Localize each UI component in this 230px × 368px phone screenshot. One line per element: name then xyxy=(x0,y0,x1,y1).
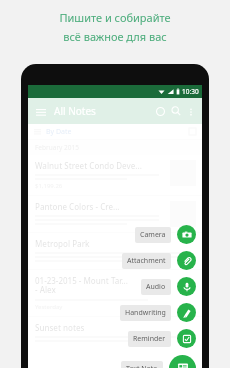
button[interactable]: Reminder xyxy=(177,329,196,348)
staticText: All Notes xyxy=(54,104,96,118)
staticText: Sunset notes xyxy=(35,322,85,333)
button[interactable]: Open navigation drawer xyxy=(33,104,48,119)
staticText: By Date xyxy=(46,127,72,137)
button[interactable]: Metropol Park xyxy=(28,233,202,269)
staticText: Metropol Park xyxy=(35,238,90,249)
button[interactable]: Camera xyxy=(135,227,171,243)
button[interactable]: Search xyxy=(168,103,184,119)
staticText: Attachment xyxy=(127,256,166,266)
staticText: Walnut Street Condo Deve... xyxy=(35,160,142,171)
staticText: Pantone Colors - Cre... xyxy=(35,201,120,212)
staticText: Пишите и собирайте xyxy=(59,10,171,25)
button[interactable]: Handwriting xyxy=(120,305,171,321)
button[interactable]: Camera xyxy=(177,225,196,244)
staticText: 10:30 xyxy=(182,87,199,96)
button[interactable]: Sync xyxy=(152,103,168,119)
button[interactable]: Attachment xyxy=(122,253,171,269)
button[interactable]: Text Note xyxy=(121,361,163,368)
staticText: Audio xyxy=(146,282,166,292)
staticText: February 2015 xyxy=(35,143,79,152)
staticText: Yesterday xyxy=(35,303,63,311)
staticText: $1,199.26 xyxy=(35,182,63,190)
button[interactable]: Handwriting xyxy=(177,303,196,322)
button[interactable]: Reminder xyxy=(128,331,171,347)
staticText: Camera xyxy=(140,230,166,240)
staticText: Text Note xyxy=(126,364,158,368)
button[interactable]: Pantone Colors - Cre... xyxy=(28,196,202,232)
staticText: Handwriting xyxy=(125,308,166,318)
button[interactable]: Attachment xyxy=(177,251,196,270)
staticText: Reminder xyxy=(133,334,166,344)
button[interactable]: Walnut Street Condo Deve... xyxy=(28,155,202,195)
button[interactable]: New text note xyxy=(169,355,196,368)
staticText: всё важное для вас xyxy=(63,29,167,44)
staticText: 01-23-2015 - Mount Tar... - Alex xyxy=(35,275,128,296)
button[interactable]: More options xyxy=(184,105,197,118)
button[interactable]: 01-23-2015 - Mount Tar... - Alex xyxy=(28,270,202,316)
button[interactable]: Sunset notes xyxy=(28,317,202,349)
button[interactable]: Audio xyxy=(141,279,171,295)
button[interactable]: Audio xyxy=(177,277,196,296)
